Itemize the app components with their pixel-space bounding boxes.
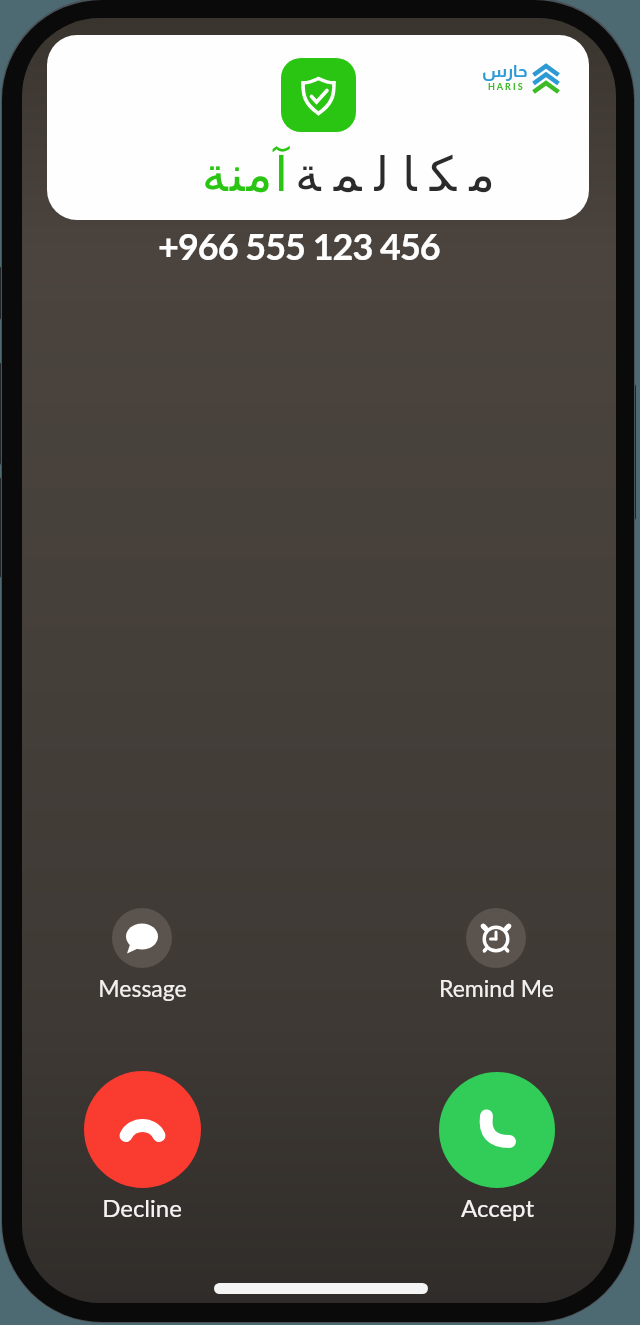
staticText: Accept xyxy=(461,1193,534,1222)
staticText: ﻣﻜﺎﻟﻤﺔ xyxy=(295,146,508,202)
staticText: Message xyxy=(98,974,187,1002)
staticText: Decline xyxy=(102,1193,182,1222)
staticText: Remind Me xyxy=(439,974,554,1002)
button[interactable]: ﺁﻣﻨﺔ xyxy=(47,35,589,220)
staticText: حارس xyxy=(482,62,528,81)
button[interactable]: Decline xyxy=(52,1071,232,1222)
staticText: H A R I S xyxy=(488,81,523,92)
button[interactable]: Remind Me xyxy=(406,908,586,1002)
button[interactable]: Accept xyxy=(407,1072,587,1222)
staticText: ﺁﻣﻨﺔ xyxy=(202,146,291,202)
staticText: +966 555 123 456 xyxy=(158,224,440,267)
button[interactable]: Message xyxy=(52,908,232,1002)
